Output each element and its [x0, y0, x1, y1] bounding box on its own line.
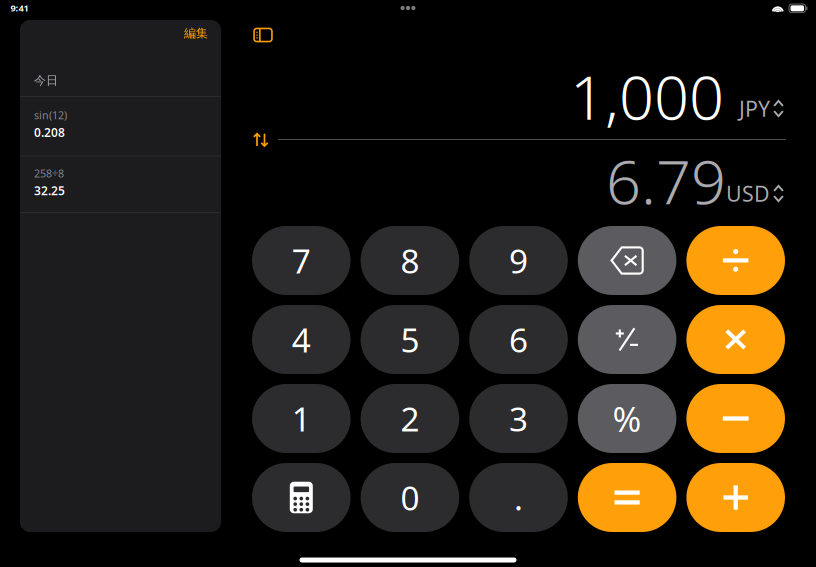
- button[interactable]: Calculator: [252, 463, 351, 532]
- button[interactable]: 7: [252, 226, 351, 295]
- staticText: 9:41: [10, 2, 28, 14]
- button[interactable]: 3: [469, 384, 568, 453]
- staticText: USD: [726, 179, 770, 208]
- staticText: 2: [400, 396, 419, 441]
- button[interactable]: 1: [252, 384, 351, 453]
- staticText: 8: [400, 238, 419, 283]
- button[interactable]: Delete: [578, 226, 676, 295]
- staticText: 今日: [34, 73, 58, 88]
- button[interactable]: Plus minus: [578, 305, 676, 374]
- button[interactable]: 2: [361, 384, 459, 453]
- button[interactable]: 5: [361, 305, 459, 374]
- button[interactable]: %: [578, 384, 676, 453]
- button[interactable]: 0: [361, 463, 459, 532]
- staticText: 0: [400, 475, 419, 520]
- staticText: 0.208: [34, 124, 65, 140]
- staticText: .: [514, 475, 523, 520]
- button[interactable]: 8: [361, 226, 459, 295]
- staticText: 5: [400, 317, 419, 362]
- button[interactable]: 編集: [176, 20, 216, 47]
- staticText: %: [613, 395, 642, 441]
- button[interactable]: 9: [469, 226, 568, 295]
- staticText: 1,000: [570, 55, 724, 137]
- button[interactable]: Swap currencies: [249, 128, 273, 151]
- staticText: 9: [509, 238, 528, 283]
- button[interactable]: 6: [469, 305, 568, 374]
- staticText: 6: [509, 317, 528, 362]
- button[interactable]: Plus: [686, 463, 785, 532]
- staticText: 編集: [184, 26, 208, 41]
- staticText: 4: [292, 317, 311, 362]
- staticText: 3: [509, 396, 528, 441]
- staticText: 7: [292, 238, 311, 283]
- staticText: 258÷8: [34, 166, 64, 180]
- staticText: 1: [292, 396, 311, 441]
- button[interactable]: sin(12): [20, 97, 221, 156]
- button[interactable]: Divide: [686, 226, 785, 295]
- button[interactable]: Toggle sidebar: [247, 22, 279, 48]
- button[interactable]: .: [469, 463, 568, 532]
- button[interactable]: 258÷8: [20, 156, 221, 212]
- staticText: 32.25: [34, 182, 65, 198]
- staticText: 6.79: [606, 140, 726, 221]
- staticText: sin(12): [34, 108, 67, 122]
- button[interactable]: Minus: [686, 384, 785, 453]
- button[interactable]: Equals: [578, 463, 676, 532]
- staticText: JPY: [739, 94, 770, 123]
- button[interactable]: Multiply: [686, 305, 785, 374]
- button[interactable]: 4: [252, 305, 351, 374]
